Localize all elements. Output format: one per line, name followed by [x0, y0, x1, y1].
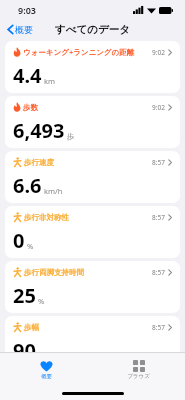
staticText: 9:02 — [152, 48, 165, 57]
staticText: km/h — [44, 186, 63, 196]
staticText: すべてのデータ — [55, 23, 130, 36]
button[interactable]: 歩幅 — [5, 316, 180, 352]
staticText: 8:57 — [152, 158, 165, 167]
other: 概要 — [40, 360, 53, 372]
staticText: 概要 — [15, 24, 33, 35]
staticText: 8:57 — [152, 213, 165, 222]
staticText: 概要 — [41, 373, 52, 380]
staticText: 8:57 — [152, 323, 165, 332]
staticText: % — [27, 241, 34, 251]
staticText: 90 — [13, 337, 36, 352]
staticText: 9:02 — [152, 103, 165, 112]
staticText: 9:03 — [18, 4, 36, 16]
staticText: ブラウズ — [127, 373, 150, 380]
staticText: 0 — [13, 227, 25, 254]
button[interactable]: ブラウズ — [92, 353, 185, 386]
button[interactable]: 概要 — [0, 353, 92, 386]
staticText: ウォーキング+ランニングの距離 — [23, 47, 135, 57]
staticText: 歩幅 — [24, 323, 39, 332]
staticText: 8:57 — [152, 268, 165, 277]
staticText: 歩行速度 — [24, 158, 54, 167]
staticText: 25 — [13, 282, 36, 309]
staticText: 歩数 — [23, 103, 38, 112]
staticText: 歩行両脚支持時間 — [24, 268, 84, 277]
button[interactable]: 歩数 — [5, 96, 180, 148]
staticText: 6,493 — [13, 117, 65, 144]
button[interactable]: 概要 — [5, 23, 35, 36]
button[interactable]: 歩行両脚支持時間 — [5, 261, 180, 313]
staticText: 歩行非対称性 — [24, 213, 69, 222]
staticText: 6.6 — [13, 172, 42, 199]
button[interactable]: 歩行速度 — [5, 151, 180, 203]
staticText: km — [44, 76, 56, 86]
button[interactable]: ウォーキング+ランニングの距離 — [5, 41, 180, 93]
other: ブラウズ — [133, 360, 145, 372]
staticText: % — [38, 296, 45, 306]
staticText: 4.4 — [13, 62, 42, 89]
staticText: 歩 — [67, 132, 75, 141]
button[interactable]: 歩行非対称性 — [5, 206, 180, 258]
